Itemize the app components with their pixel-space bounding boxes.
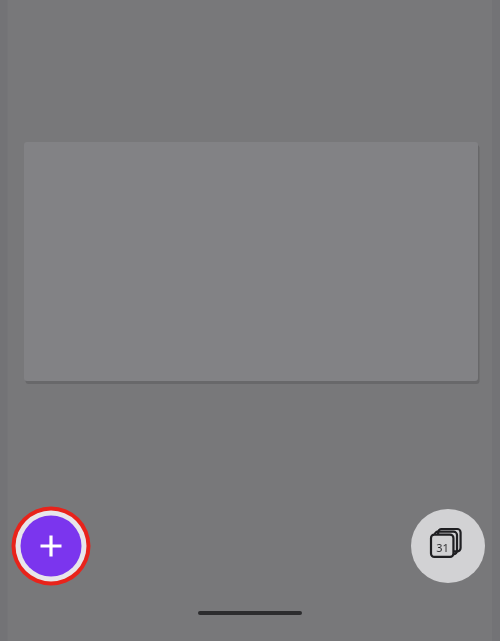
button[interactable]: Calendar [411,509,485,583]
staticText: 31 [436,540,449,553]
button[interactable]: Create new event [10,505,92,587]
